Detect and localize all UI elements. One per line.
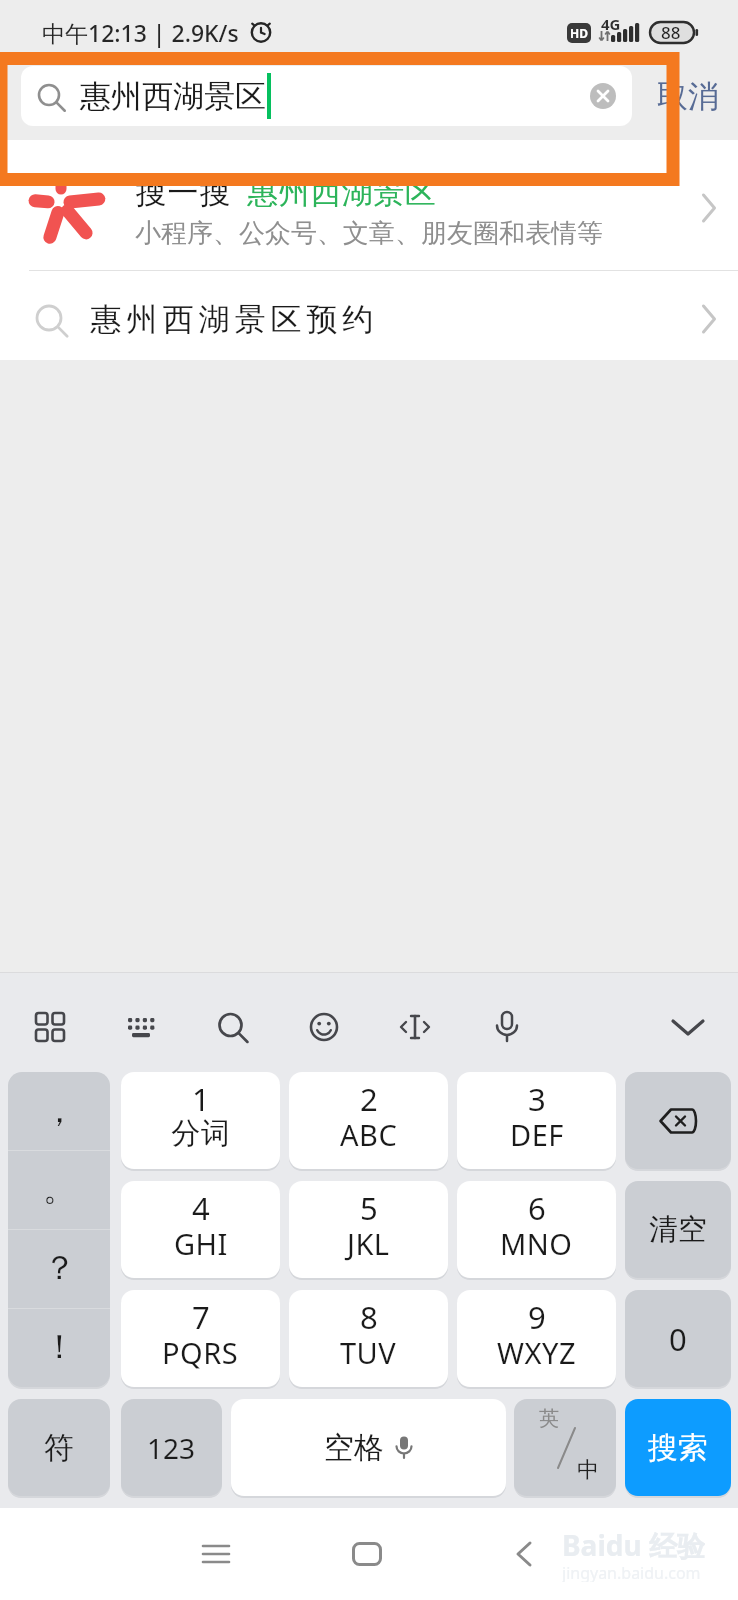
button[interactable]: 4 [121, 1181, 280, 1278]
button[interactable] [671, 1018, 705, 1038]
button[interactable] [514, 1541, 534, 1567]
button[interactable]: 。 [8, 1150, 110, 1228]
staticText: MNO [500, 1224, 573, 1263]
staticText: 0 [669, 1318, 687, 1360]
button[interactable] [352, 1542, 382, 1566]
button[interactable] [590, 83, 616, 109]
staticText: 中 [577, 1456, 599, 1484]
button[interactable] [202, 1540, 230, 1568]
button[interactable]: 空格 [231, 1399, 506, 1496]
button[interactable]: 1 [121, 1072, 280, 1169]
staticText: WXYZ [497, 1333, 576, 1372]
button[interactable]: 搜索 [625, 1399, 731, 1496]
button[interactable]: ， [8, 1072, 110, 1150]
staticText: 2 [360, 1078, 378, 1120]
staticText: 6 [528, 1187, 546, 1229]
staticText: 取消 [657, 77, 719, 116]
button[interactable]: 5 [289, 1181, 448, 1278]
staticText: 惠州西湖景区预约 [88, 300, 376, 336]
staticText: 4G [601, 14, 621, 32]
staticText: JKL [347, 1224, 390, 1263]
button[interactable] [34, 1011, 66, 1043]
button[interactable] [491, 1010, 523, 1044]
staticText: TUV [340, 1333, 397, 1372]
staticText: 搜索 [648, 1429, 708, 1467]
staticText: ！ [43, 1326, 76, 1368]
button[interactable]: 7 [121, 1290, 280, 1387]
button[interactable]: 123 [121, 1399, 222, 1496]
staticText: HD [570, 25, 588, 41]
button[interactable]: 8 [289, 1290, 448, 1387]
staticText: 搜一搜 [135, 173, 231, 212]
staticText: 5 [360, 1187, 378, 1229]
staticText: 。 [43, 1168, 76, 1210]
button[interactable]: ！ [8, 1308, 110, 1386]
button[interactable]: ？ [8, 1229, 110, 1307]
button[interactable]: 2 [289, 1072, 448, 1169]
button[interactable]: 9 [457, 1290, 616, 1387]
staticText: 分词 [171, 1115, 230, 1152]
button[interactable] [625, 1072, 731, 1169]
button[interactable]: 符 [8, 1399, 110, 1496]
staticText: 英 [539, 1406, 559, 1431]
staticText: ？ [43, 1247, 76, 1289]
staticText: 符 [44, 1429, 74, 1467]
staticText: 1 [192, 1078, 210, 1120]
button[interactable]: 取消 [648, 66, 728, 126]
button[interactable] [308, 1011, 340, 1043]
staticText: 惠州西湖景区 [247, 173, 436, 212]
staticText: 3 [528, 1078, 546, 1120]
staticText: 7 [192, 1296, 210, 1338]
button[interactable] [0, 271, 738, 360]
button[interactable] [125, 1011, 157, 1043]
staticText: 9 [528, 1296, 546, 1338]
staticText: 清空 [649, 1211, 707, 1248]
button[interactable] [216, 1011, 248, 1043]
staticText: 88 [661, 21, 681, 44]
button[interactable]: 清空 [625, 1181, 731, 1278]
staticText: 4 [192, 1187, 210, 1229]
staticText: 小程序、公众号、文章、朋友圈和表情等 [135, 217, 603, 247]
button[interactable] [399, 1011, 431, 1043]
staticText: 惠州西湖景区 [80, 77, 266, 116]
button[interactable]: 3 [457, 1072, 616, 1169]
staticText: PQRS [162, 1333, 239, 1372]
staticText: jingyan.baidu.com [562, 1562, 701, 1582]
staticText: 空格 [324, 1429, 384, 1467]
staticText: DEF [510, 1115, 564, 1154]
button[interactable]: 0 [625, 1290, 731, 1387]
button[interactable] [0, 140, 738, 270]
staticText: 123 [147, 1429, 196, 1467]
staticText: GHI [174, 1224, 228, 1263]
staticText: 中午12:13 | 2.9K/s [42, 17, 239, 48]
staticText: ， [43, 1090, 76, 1132]
staticText: ABC [340, 1115, 398, 1154]
staticText: 8 [360, 1296, 378, 1338]
button[interactable] [21, 66, 632, 126]
staticText: Baidu 经验 [562, 1526, 705, 1562]
button[interactable]: 6 [457, 1181, 616, 1278]
button[interactable]: 英 [514, 1399, 616, 1496]
